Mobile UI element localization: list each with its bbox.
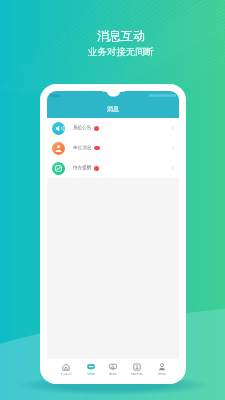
- staticText: 系统公告: [73, 125, 92, 131]
- staticText: 消息: [87, 372, 95, 375]
- staticText: 待办提醒: [73, 165, 92, 171]
- staticText: 消息: [107, 105, 119, 113]
- staticText: 我的: [158, 372, 166, 375]
- button[interactable]: 数据: [108, 359, 118, 377]
- staticText: 通讯录: [131, 372, 143, 375]
- button[interactable]: 系统公告: [47, 118, 179, 138]
- staticText: 工作台: [60, 372, 72, 375]
- button[interactable]: 待办提醒: [47, 158, 179, 178]
- staticText: 单位消息: [73, 145, 92, 151]
- button[interactable]: 通讯录: [130, 359, 144, 377]
- button[interactable]: 单位消息: [47, 138, 179, 158]
- button[interactable]: 工作台: [59, 359, 73, 377]
- staticText: 数据: [109, 372, 117, 375]
- button[interactable]: 我的: [157, 359, 167, 377]
- staticText: 消息互动: [97, 28, 145, 43]
- button[interactable]: 消息: [86, 359, 96, 377]
- staticText: 业务对接无间断: [88, 46, 154, 58]
